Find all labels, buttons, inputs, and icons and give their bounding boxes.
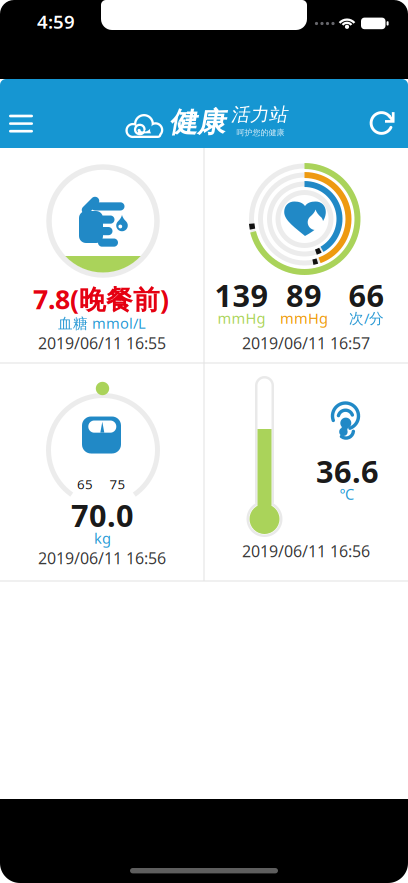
staticText: 4:59	[37, 9, 75, 34]
staticText: ℃	[339, 484, 354, 504]
staticText: 139	[214, 275, 268, 315]
staticText: 次/分	[349, 308, 384, 328]
staticText: 36.6	[316, 451, 379, 491]
staticText: 2019/06/11 16:56	[38, 547, 166, 569]
staticText: 75	[109, 475, 125, 493]
button[interactable]: 7.8(晚餐前)	[0, 148, 204, 363]
staticText: 89	[286, 275, 322, 315]
staticText: 65	[77, 475, 93, 493]
staticText: mmHg	[280, 308, 328, 328]
staticText: 66	[348, 275, 384, 315]
staticText: 70.0	[71, 495, 134, 535]
button[interactable]: Refresh	[358, 101, 402, 145]
staticText: 健康	[170, 105, 226, 140]
staticText: 血糖 mmol/L	[58, 313, 146, 333]
button[interactable]: 36.6	[204, 363, 408, 581]
button[interactable]: Menu	[0, 101, 43, 145]
staticText: 呵护您的健康	[236, 128, 284, 137]
staticText: 2019/06/11 16:57	[242, 332, 370, 354]
staticText: kg	[94, 528, 111, 548]
staticText: 2019/06/11 16:55	[38, 332, 166, 354]
staticText: 活力站	[232, 103, 289, 126]
button[interactable]: 139	[204, 148, 408, 363]
button[interactable]: 65	[0, 363, 204, 581]
staticText: 7.8(晚餐前)	[33, 281, 169, 317]
staticText: 2019/06/11 16:56	[242, 540, 370, 562]
staticText: mmHg	[217, 308, 265, 328]
